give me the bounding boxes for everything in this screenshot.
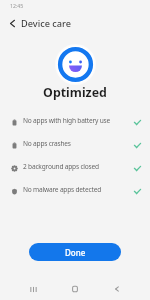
button[interactable]: Home bbox=[63, 277, 87, 300]
staticText: No apps with high battery use bbox=[23, 116, 133, 125]
button[interactable]: 2 background apps closed bbox=[0, 157, 150, 180]
button[interactable]: Back bbox=[105, 277, 129, 300]
staticText: No apps crashes bbox=[23, 139, 133, 148]
button[interactable]: No malware apps detected bbox=[0, 180, 150, 203]
button[interactable]: No apps crashes bbox=[0, 134, 150, 157]
button[interactable]: Done bbox=[29, 243, 121, 261]
staticText: Device care bbox=[21, 17, 72, 30]
button[interactable]: Navigate up bbox=[4, 15, 20, 31]
staticText: Done bbox=[65, 247, 86, 258]
staticText: 2 background apps closed bbox=[23, 162, 133, 171]
staticText: No malware apps detected bbox=[23, 185, 133, 194]
staticText: Optimized bbox=[0, 84, 150, 101]
staticText: 12:45 bbox=[10, 2, 24, 9]
button[interactable]: Recent apps bbox=[21, 277, 45, 300]
button[interactable]: No apps with high battery use bbox=[0, 111, 150, 134]
